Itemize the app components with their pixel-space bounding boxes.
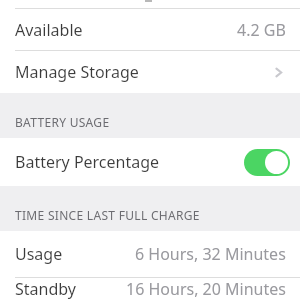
staticText: Manage Storage [15,61,139,83]
button[interactable]: Battery Percentage [0,138,300,186]
staticText: 6 Hours, 32 Minutes [135,243,286,265]
staticText: 16 Hours, 20 Minutes [126,278,286,300]
button[interactable]: Battery Percentage, on [244,149,290,176]
staticText: 4.2 GB [237,19,286,41]
staticText: BATTERY USAGE [15,114,110,130]
staticText: Usage [15,243,63,265]
button[interactable]: Standby [0,278,300,300]
staticText: Battery Percentage [15,151,160,173]
staticText: Standby [15,278,76,300]
button[interactable]: Manage Storage [0,51,300,93]
button[interactable]: Available [0,9,300,50]
button[interactable]: Usage [0,231,300,277]
staticText: TIME SINCE LAST FULL CHARGE [15,207,200,223]
staticText: Available [15,19,83,41]
